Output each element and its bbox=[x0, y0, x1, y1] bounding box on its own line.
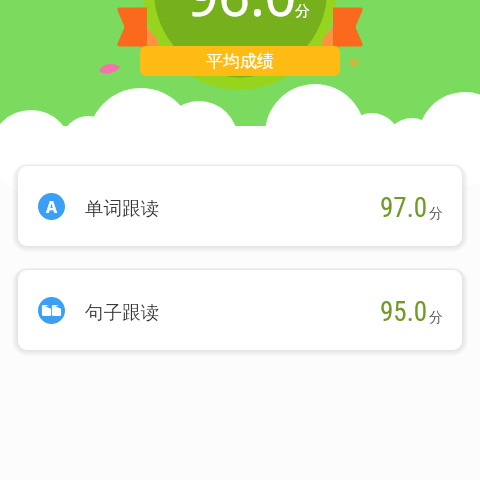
button[interactable]: A bbox=[18, 166, 462, 246]
staticText: 句子跟读 bbox=[85, 301, 159, 324]
staticText: 分 bbox=[429, 309, 443, 327]
staticText: 97.0 bbox=[380, 192, 428, 224]
staticText: 分 bbox=[429, 205, 443, 223]
staticText: 95.0 bbox=[380, 296, 428, 328]
staticText: A bbox=[46, 196, 58, 218]
staticText: 平均成绩 bbox=[206, 51, 274, 72]
staticText: 分 bbox=[295, 2, 310, 21]
staticText: 单词跟读 bbox=[85, 197, 159, 220]
button[interactable]: 句子跟读 bbox=[18, 270, 462, 350]
staticText: 96.0 bbox=[187, 0, 297, 32]
